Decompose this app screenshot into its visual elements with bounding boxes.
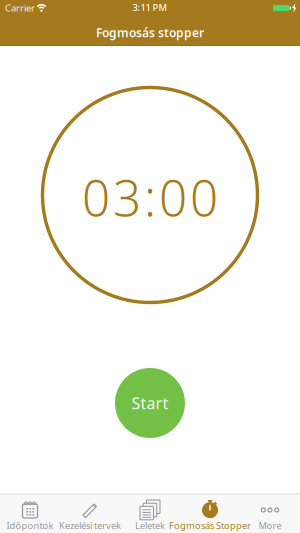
staticText: Start — [131, 392, 168, 414]
staticText: Fogmosás stopper — [96, 24, 204, 40]
button[interactable]: Leletek — [120, 493, 180, 533]
button[interactable]: Fogmosás Stopper — [180, 493, 240, 533]
staticText: 03:00 — [82, 164, 218, 230]
button[interactable]: More — [240, 493, 300, 533]
staticText: Leletek — [135, 519, 165, 532]
button[interactable]: Időpontok — [0, 493, 60, 533]
staticText: Kezelési tervek — [59, 519, 121, 532]
staticText: Időpontok — [6, 519, 53, 532]
staticText: Carrier — [5, 2, 35, 14]
staticText: Fogmosás Stopper — [169, 519, 251, 532]
button[interactable]: Start — [115, 368, 185, 438]
staticText: 3:11 PM — [132, 1, 167, 14]
staticText: More — [258, 519, 281, 532]
button[interactable]: Kezelési tervek — [60, 493, 120, 533]
